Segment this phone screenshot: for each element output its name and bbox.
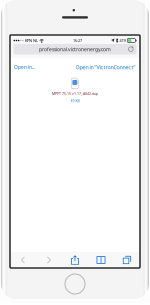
- staticText: Open in...: [14, 64, 35, 70]
- staticText: 41%: [119, 38, 126, 43]
- staticText: 49 KB: [70, 98, 79, 103]
- button[interactable]: Open in “VictronConnect”: [75, 63, 135, 71]
- button[interactable]: Forward: [36, 252, 62, 268]
- staticText: professional.victronenergy.com: [39, 46, 111, 53]
- button[interactable]: Open in...: [14, 64, 35, 70]
- staticText: Open in “VictronConnect”: [75, 63, 135, 71]
- button[interactable]: Tabs: [114, 252, 140, 268]
- button[interactable]: Bookmarks: [88, 252, 114, 268]
- button[interactable]: professional.victronenergy.com: [13, 44, 136, 54]
- button[interactable]: Share: [62, 252, 88, 268]
- staticText: 16:27: [73, 38, 82, 43]
- staticText: MPPT 75-15 v1.17_A042.dup: [52, 91, 98, 96]
- staticText: KPN NL: [25, 38, 38, 43]
- button[interactable]: Back: [10, 252, 36, 268]
